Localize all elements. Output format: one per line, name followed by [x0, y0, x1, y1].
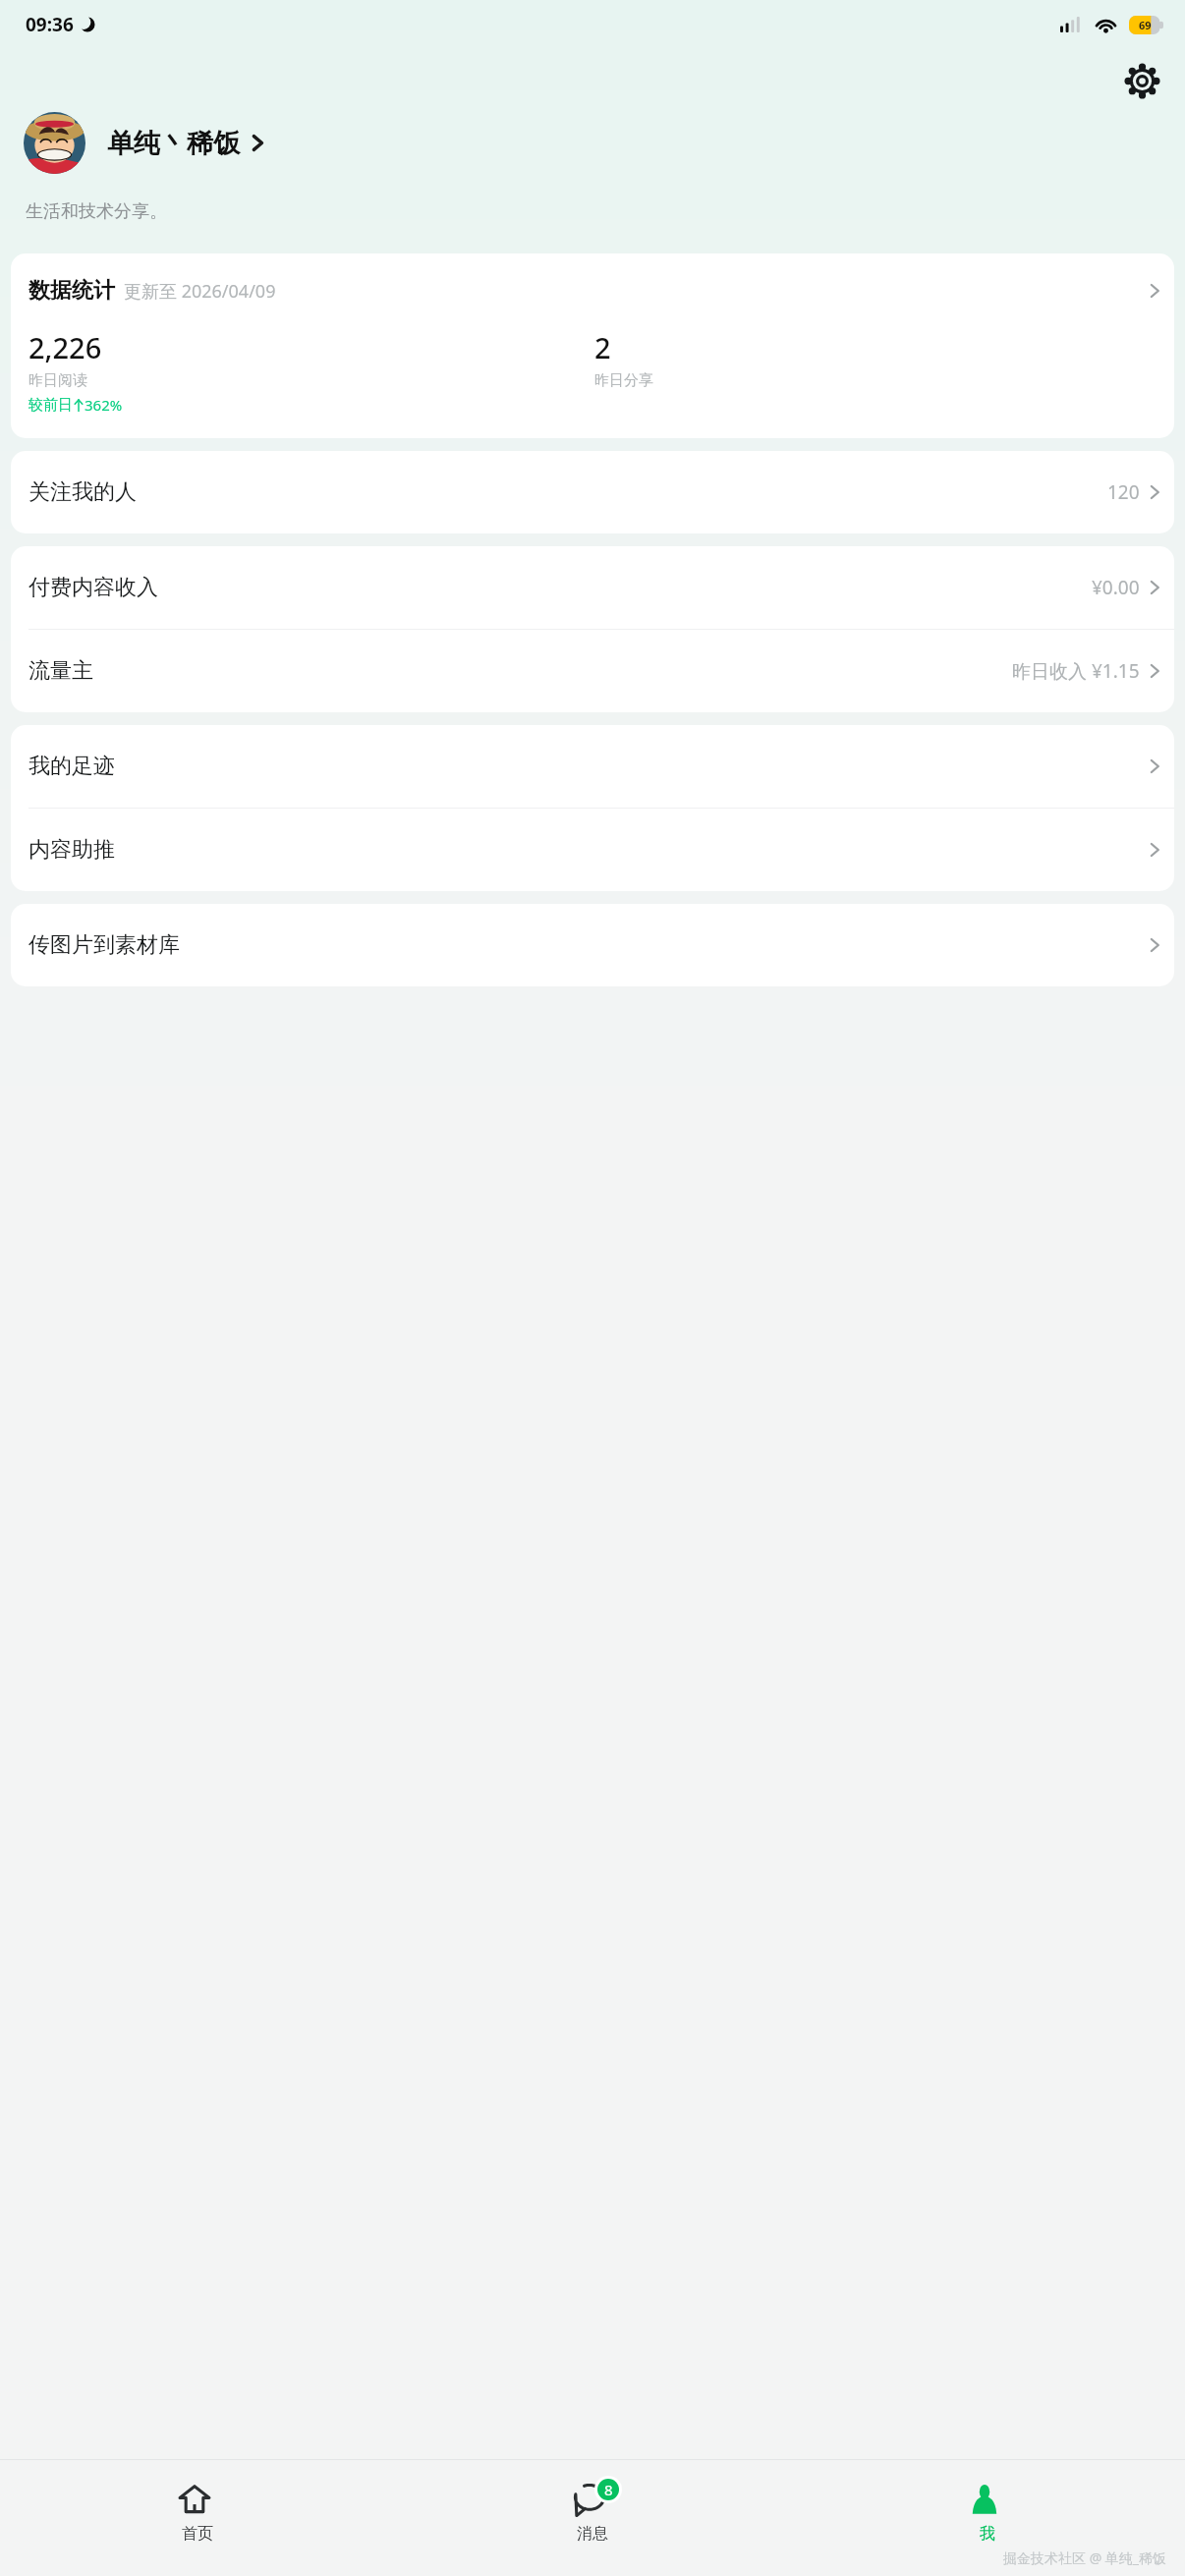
staticText: 较前日: [28, 396, 73, 415]
staticText: 69: [1139, 18, 1152, 32]
staticText: ¥0.00: [1092, 575, 1140, 600]
button[interactable]: 传图片到素材库: [11, 904, 1174, 986]
staticText: 昨日阅读: [28, 371, 87, 390]
staticText: 数据统计: [28, 277, 115, 305]
staticText: 流量主: [28, 657, 93, 685]
staticText: 首页: [182, 2524, 213, 2544]
staticText: 付费内容收入: [28, 574, 158, 601]
button[interactable]: 关注我的人: [11, 451, 1174, 533]
button[interactable]: 我: [790, 2473, 1185, 2547]
button[interactable]: 内容助推: [11, 809, 1174, 891]
button[interactable]: 付费内容收入: [11, 546, 1174, 629]
button[interactable]: Settings: [1118, 57, 1165, 104]
staticText: 生活和技术分享。: [26, 200, 167, 223]
staticText: 8: [604, 2480, 613, 2499]
button[interactable]: 数据统计: [11, 253, 1174, 438]
staticText: 2,226: [28, 328, 102, 366]
staticText: 2: [594, 328, 611, 366]
staticText: 我的足迹: [28, 753, 115, 780]
staticText: 我: [980, 2524, 995, 2544]
staticText: 120: [1107, 479, 1140, 505]
staticText: 更新至 2026/04/09: [124, 279, 276, 304]
button[interactable]: 我的足迹: [11, 725, 1174, 808]
button[interactable]: 首页: [0, 2473, 395, 2547]
staticText: 内容助推: [28, 836, 115, 864]
staticText: 传图片到素材库: [28, 931, 180, 959]
staticText: 362%: [85, 395, 123, 415]
staticText: 消息: [577, 2524, 608, 2544]
staticText: 昨日收入 ¥1.15: [1012, 658, 1140, 684]
staticText: 09:36: [26, 12, 74, 37]
button[interactable]: 流量主: [11, 630, 1174, 712]
staticText: 单纯丶稀饭: [107, 127, 240, 160]
staticText: 昨日分享: [594, 371, 653, 390]
button[interactable]: 单纯丶稀饭: [24, 112, 1161, 174]
button[interactable]: 8: [395, 2473, 790, 2547]
staticText: 关注我的人: [28, 478, 137, 506]
staticText: 掘金技术社区 @ 单纯_稀饭: [1003, 2548, 1167, 2567]
